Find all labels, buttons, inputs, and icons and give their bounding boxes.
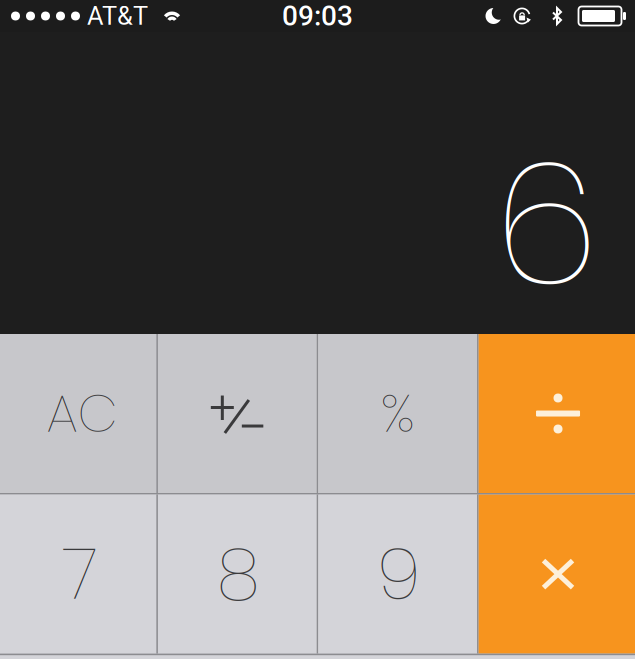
button[interactable]: Nine	[318, 495, 477, 654]
button[interactable]: Divide	[479, 334, 635, 493]
staticText: 09:03	[282, 0, 353, 32]
staticText: %	[381, 377, 415, 450]
button[interactable]: Multiply	[479, 495, 635, 654]
staticText: AT&T	[87, 1, 148, 31]
button[interactable]: Eight	[158, 495, 317, 654]
staticText: AC	[46, 377, 117, 450]
button[interactable]: Seven	[0, 495, 156, 654]
staticText: 6	[494, 104, 599, 343]
staticText: 7	[62, 525, 97, 623]
button[interactable]: All Clear	[0, 334, 156, 493]
button[interactable]: Percent	[318, 334, 477, 493]
button[interactable]: Plus Minus	[158, 334, 317, 493]
staticText: 9	[377, 525, 420, 623]
staticText: 8	[217, 525, 260, 623]
